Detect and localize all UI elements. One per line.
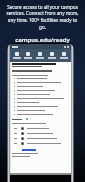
- button[interactable]: Edit: [11, 52, 22, 59]
- button[interactable]: Share: [22, 52, 34, 59]
- staticText: campus.edu/ready: [5, 36, 80, 44]
- button[interactable]: Export: [46, 52, 58, 59]
- staticText: Secure access to all your campus service…: [5, 4, 80, 31]
- button[interactable]: More: [58, 52, 70, 59]
- button[interactable]: Print: [34, 52, 46, 59]
